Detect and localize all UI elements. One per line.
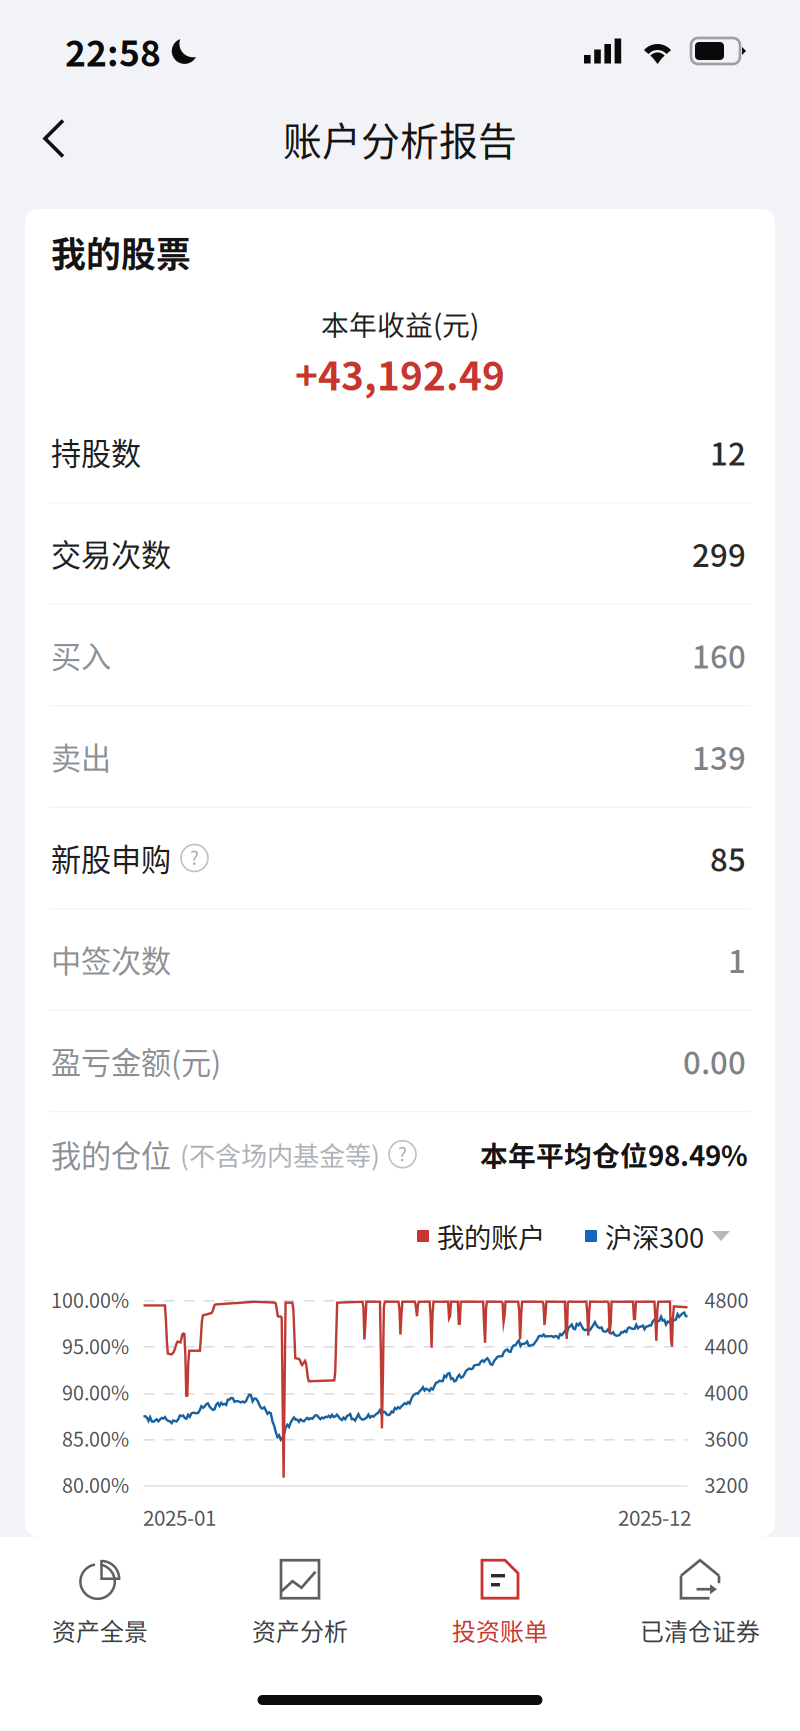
staticText: 1 bbox=[728, 937, 746, 982]
staticText: 95.00% bbox=[62, 1331, 129, 1360]
staticText: 中签次数 bbox=[51, 938, 171, 981]
staticText: 22:58 bbox=[65, 25, 161, 77]
staticText: 资产全景 bbox=[52, 1613, 148, 1647]
staticText: 我的仓位 bbox=[51, 1132, 171, 1176]
staticText: 85 bbox=[710, 835, 746, 881]
staticText: 我的股票 bbox=[51, 227, 191, 277]
staticText: 资产分析 bbox=[252, 1613, 348, 1647]
staticText: 4800 bbox=[704, 1285, 748, 1314]
staticText: 80.00% bbox=[62, 1470, 129, 1499]
staticText: 已清仓证券 bbox=[640, 1613, 760, 1647]
staticText: 持股数 bbox=[51, 430, 141, 474]
staticText: 2025-12 bbox=[618, 1502, 691, 1532]
staticText: 3600 bbox=[704, 1424, 748, 1452]
button[interactable]: 资产全景 bbox=[0, 1541, 200, 1665]
staticText: 3200 bbox=[704, 1470, 748, 1499]
staticText: 4400 bbox=[704, 1331, 748, 1360]
staticText: 4000 bbox=[704, 1377, 748, 1406]
staticText: 沪深300 bbox=[605, 1216, 704, 1256]
button[interactable]: 已清仓证券 bbox=[600, 1541, 800, 1665]
staticText: 0.00 bbox=[683, 1038, 746, 1084]
staticText: 交易次数 bbox=[51, 532, 171, 575]
staticText: 12 bbox=[710, 429, 746, 475]
staticText: 账户分析报告 bbox=[283, 110, 517, 167]
staticText: 卖出 bbox=[51, 735, 111, 778]
staticText: 85.00% bbox=[62, 1424, 129, 1452]
button[interactable]: 返回 bbox=[23, 102, 85, 174]
button[interactable]: 资产分析 bbox=[200, 1541, 400, 1665]
staticText: 盈亏金额(元) bbox=[51, 1039, 221, 1083]
staticText: 160 bbox=[692, 632, 746, 678]
staticText: 2025-01 bbox=[143, 1502, 216, 1532]
staticText: ? bbox=[398, 1140, 407, 1167]
staticText: +43,192.49 bbox=[295, 345, 505, 402]
staticText: 100.00% bbox=[51, 1285, 129, 1314]
staticText: 买入 bbox=[51, 633, 111, 677]
staticText: 本年收益(元) bbox=[321, 303, 479, 344]
staticText: 投资账单 bbox=[452, 1613, 548, 1647]
button[interactable]: 投资账单 bbox=[400, 1541, 600, 1665]
staticText: (不含场内基金等) bbox=[180, 1135, 380, 1173]
staticText: 本年平均仓位98.49% bbox=[480, 1134, 748, 1174]
staticText: 我的账户 bbox=[437, 1216, 545, 1256]
staticText: 新股申购 bbox=[51, 836, 171, 880]
staticText: ? bbox=[190, 843, 199, 870]
staticText: 299 bbox=[692, 531, 746, 576]
staticText: 139 bbox=[692, 734, 746, 779]
button[interactable]: 切换对比指数 bbox=[704, 1217, 738, 1255]
staticText: 90.00% bbox=[62, 1377, 129, 1406]
